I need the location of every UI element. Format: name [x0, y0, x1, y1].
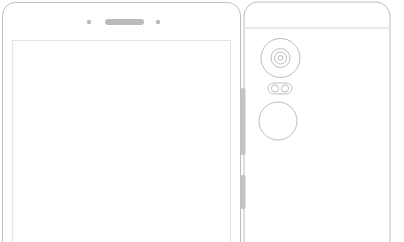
button[interactable]: Phone front view — [0, 0, 404, 242]
button[interactable]: Phone back view — [0, 0, 404, 242]
